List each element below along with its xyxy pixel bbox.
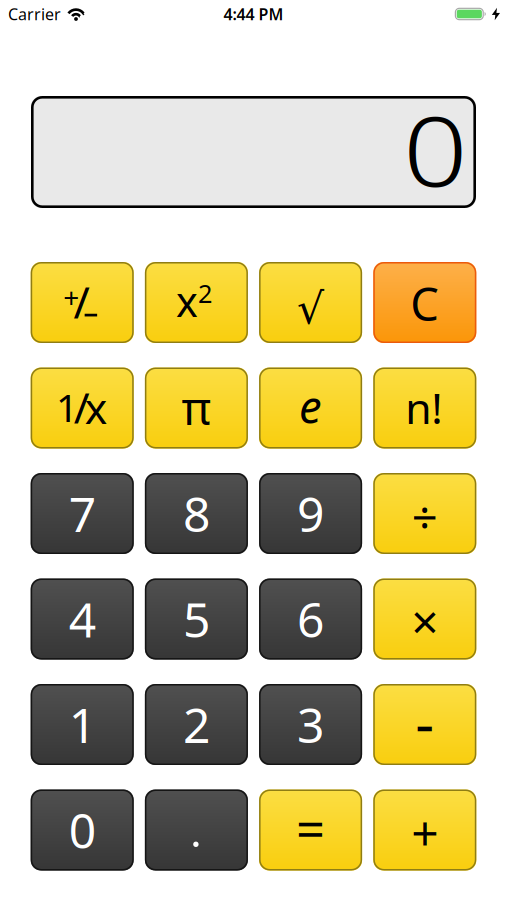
button[interactable]: Euler's number <box>259 367 362 448</box>
staticText: √ <box>297 285 324 333</box>
staticText: / <box>74 379 90 435</box>
button[interactable]: Minus <box>373 684 476 765</box>
button[interactable]: 0 <box>31 789 134 870</box>
staticText: + <box>63 278 79 316</box>
button[interactable]: Toggle sign <box>31 262 134 343</box>
staticText: 1 <box>69 693 96 756</box>
staticText: 9 <box>297 482 324 545</box>
button[interactable]: x squared <box>145 262 248 343</box>
button[interactable]: One over x <box>31 367 134 448</box>
staticText: 5 <box>183 587 210 651</box>
staticText: Carrier <box>8 3 61 25</box>
button[interactable]: 9 <box>259 473 362 554</box>
button[interactable]: Factorial <box>373 367 476 448</box>
staticText: 2 <box>183 693 210 756</box>
staticText: 3 <box>297 693 324 756</box>
staticText: 8 <box>183 482 210 545</box>
button[interactable]: Plus <box>373 789 476 870</box>
button[interactable]: 7 <box>31 473 134 554</box>
staticText: 6 <box>297 587 324 651</box>
button[interactable]: 1 <box>31 684 134 765</box>
staticText: x <box>176 274 198 328</box>
staticText: = <box>296 794 325 862</box>
staticText: n! <box>405 379 442 436</box>
staticText: 0 <box>413 85 468 213</box>
staticText: × <box>411 589 438 653</box>
button[interactable]: Multiply <box>373 578 476 659</box>
button[interactable]: 5 <box>145 578 248 659</box>
staticText: / <box>74 272 90 331</box>
button[interactable]: Clear <box>373 262 476 343</box>
button[interactable]: 4 <box>31 578 134 659</box>
staticText: 4:44 PM <box>223 3 283 25</box>
staticText: + <box>411 800 438 864</box>
staticText: π <box>181 377 211 438</box>
button[interactable]: Square root <box>259 262 362 343</box>
staticText: 2 <box>198 276 212 310</box>
staticText: e <box>299 376 322 436</box>
staticText: 1 <box>56 381 78 433</box>
staticText: 4 <box>69 587 96 651</box>
button[interactable]: 3 <box>259 684 362 765</box>
button[interactable]: 6 <box>259 578 362 659</box>
button[interactable]: Equals <box>259 789 362 870</box>
button[interactable]: Decimal point <box>145 789 248 870</box>
button[interactable]: Divide <box>373 473 476 554</box>
staticText: - <box>415 682 434 760</box>
staticText: 7 <box>69 482 96 545</box>
button[interactable]: 2 <box>145 684 248 765</box>
button[interactable]: 8 <box>145 473 248 554</box>
button[interactable]: Pi <box>145 367 248 448</box>
staticText: ÷ <box>412 487 438 547</box>
staticText: 0 <box>69 798 96 862</box>
staticText: x <box>85 379 108 436</box>
staticText: C <box>410 273 439 334</box>
